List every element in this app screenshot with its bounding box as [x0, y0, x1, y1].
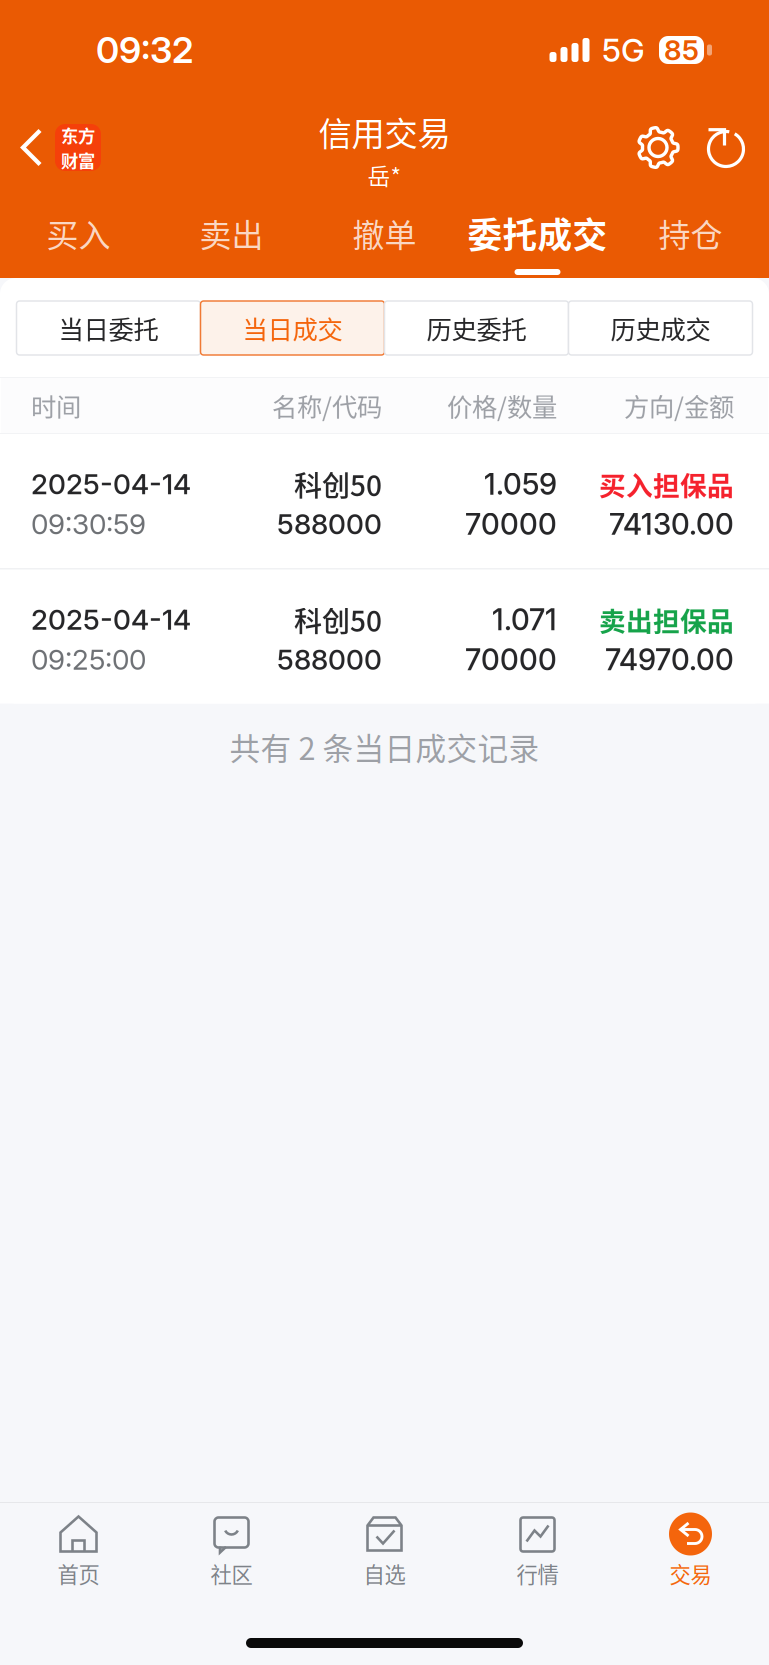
staticText: 1.059: [484, 466, 557, 502]
button[interactable]: 当日成交: [200, 301, 384, 355]
button[interactable]: 行情: [461, 1501, 614, 1617]
staticText: 首页: [57, 1558, 99, 1589]
staticText: 行情: [516, 1558, 558, 1589]
staticText: 09:25:00: [31, 643, 146, 676]
staticText: 70000: [465, 506, 557, 542]
button[interactable]: 社区: [155, 1501, 308, 1617]
staticText: 方向/金额: [624, 387, 734, 424]
staticText: 信用交易: [318, 107, 450, 156]
staticText: 历史成交: [610, 310, 710, 346]
staticText: 09:30:59: [31, 507, 146, 541]
staticText: 共有 2 条当日成交记录: [229, 724, 539, 769]
staticText: 买入担保品: [599, 465, 734, 503]
staticText: 588000: [277, 507, 382, 541]
staticText: 2025-04-14: [31, 467, 191, 501]
staticText: 科创50: [294, 464, 382, 504]
staticText: 2025-04-14: [31, 603, 191, 636]
button[interactable]: 设置: [622, 102, 694, 192]
staticText: 科创50: [294, 599, 382, 640]
staticText: 09:32: [96, 28, 193, 72]
staticText: 撤单: [352, 210, 416, 256]
staticText: 588000: [277, 643, 382, 676]
staticText: 70000: [465, 642, 557, 677]
button[interactable]: 自选: [308, 1501, 461, 1617]
staticText: 名称/代码: [272, 387, 382, 424]
staticText: 卖出: [199, 210, 263, 256]
staticText: 交易: [669, 1558, 711, 1589]
staticText: 价格/数量: [447, 387, 557, 424]
staticText: 当日委托: [58, 310, 158, 346]
button[interactable]: 委托成交: [461, 190, 614, 278]
staticText: 自选: [363, 1558, 405, 1589]
button[interactable]: 当日委托: [16, 301, 200, 355]
staticText: 历史委托: [426, 310, 526, 346]
button[interactable]: 卖出: [155, 190, 308, 278]
staticText: 委托成交: [467, 208, 607, 258]
staticText: 1.071: [492, 602, 557, 637]
button[interactable]: 历史成交: [568, 301, 752, 355]
staticText: 85: [664, 33, 699, 67]
staticText: 财富: [61, 147, 95, 173]
staticText: 社区: [210, 1558, 252, 1589]
staticText: 74130.00: [609, 506, 734, 542]
staticText: 买入: [46, 210, 110, 256]
staticText: 5G: [602, 31, 645, 69]
staticText: 74970.00: [605, 642, 734, 677]
button[interactable]: 首页: [2, 1501, 155, 1617]
button[interactable]: 撤单: [308, 190, 461, 278]
staticText: 持仓: [658, 210, 722, 256]
button[interactable]: 2025-04-14: [0, 434, 769, 568]
button[interactable]: 买入: [2, 190, 155, 278]
staticText: 卖出担保品: [599, 600, 734, 639]
button[interactable]: 2025-04-14: [0, 569, 769, 703]
staticText: 时间: [31, 387, 81, 424]
button[interactable]: 刷新: [694, 102, 760, 192]
staticText: 当日成交: [242, 310, 342, 346]
button[interactable]: 返回: [0, 102, 115, 192]
staticText: 东方: [61, 122, 95, 147]
button[interactable]: 历史委托: [384, 301, 568, 355]
staticText: 岳*: [367, 159, 401, 191]
button[interactable]: 交易: [614, 1501, 767, 1617]
button[interactable]: 持仓: [614, 190, 767, 278]
